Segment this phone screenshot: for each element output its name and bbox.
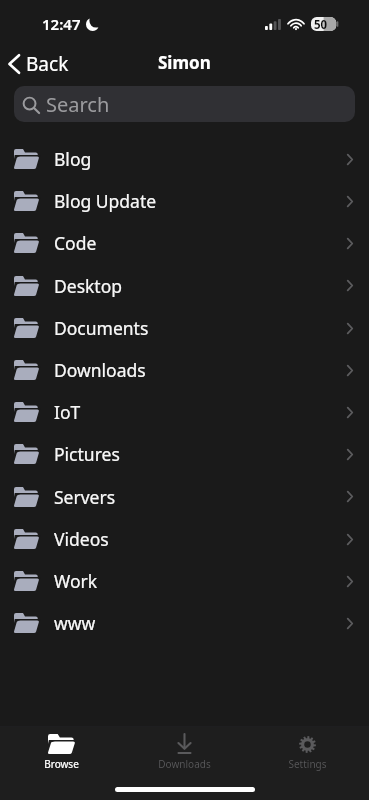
button[interactable]: IoT bbox=[0, 391, 369, 433]
staticText: 12:47 bbox=[42, 14, 81, 34]
staticText: Desktop bbox=[54, 274, 123, 298]
button[interactable]: www bbox=[0, 602, 369, 644]
staticText: Blog bbox=[54, 147, 92, 171]
button[interactable]: Browse bbox=[0, 729, 123, 775]
button[interactable]: Blog bbox=[0, 138, 369, 180]
staticText: Documents bbox=[54, 316, 149, 340]
staticText: Servers bbox=[54, 485, 116, 509]
staticText: Settings bbox=[288, 757, 327, 771]
staticText: 50 bbox=[314, 17, 328, 30]
button[interactable]: Desktop bbox=[0, 264, 369, 307]
button[interactable]: Videos bbox=[0, 518, 369, 560]
staticText: Browse bbox=[44, 757, 79, 771]
button[interactable]: Documents bbox=[0, 307, 369, 349]
staticText: Videos bbox=[54, 527, 109, 551]
button[interactable]: Settings bbox=[246, 729, 369, 775]
button[interactable]: Search bbox=[14, 86, 355, 122]
staticText: Work bbox=[54, 569, 98, 593]
button[interactable]: Downloads bbox=[0, 349, 369, 391]
staticText: Pictures bbox=[54, 442, 120, 466]
button[interactable]: Code bbox=[0, 222, 369, 264]
staticText: Search bbox=[46, 91, 110, 118]
button[interactable]: Downloads bbox=[123, 729, 246, 775]
staticText: Code bbox=[54, 231, 97, 255]
button[interactable]: Pictures bbox=[0, 433, 369, 475]
button[interactable]: Back bbox=[0, 47, 81, 78]
staticText: Back bbox=[26, 51, 69, 74]
staticText: Simon bbox=[158, 51, 211, 74]
staticText: Downloads bbox=[158, 757, 211, 771]
staticText: IoT bbox=[54, 400, 81, 424]
staticText: www bbox=[54, 611, 96, 635]
staticText: Blog Update bbox=[54, 189, 157, 213]
button[interactable]: Blog Update bbox=[0, 180, 369, 222]
staticText: Downloads bbox=[54, 358, 146, 382]
button[interactable]: Work bbox=[0, 560, 369, 602]
button[interactable]: Servers bbox=[0, 475, 369, 518]
